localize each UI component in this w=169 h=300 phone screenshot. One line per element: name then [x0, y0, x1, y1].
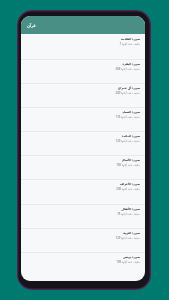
- staticText: مدنية - عدد آياتها 129: [115, 236, 140, 240]
- staticText: سورة يونس: [123, 255, 140, 259]
- button[interactable]: سورة الفاتحة: [21, 34, 145, 59]
- button[interactable]: سورة آل عمران: [21, 83, 145, 107]
- staticText: سورة التوبة: [123, 231, 140, 235]
- staticText: سورة المائدة: [121, 134, 140, 138]
- button[interactable]: سورة الأعراف: [21, 179, 145, 203]
- staticText: سورة آل عمران: [117, 86, 140, 90]
- staticText: مدنية - عدد آياتها 200: [115, 91, 140, 95]
- staticText: مدنية - عدد آياتها 120: [115, 139, 140, 143]
- staticText: قرآن: [27, 23, 36, 28]
- staticText: سورة الأعراف: [119, 182, 140, 186]
- button[interactable]: سورة النساء: [21, 107, 145, 131]
- staticText: مكية - عدد آياتها 165: [116, 163, 140, 167]
- staticText: مدنية - عدد آياتها 176: [115, 115, 140, 119]
- staticText: مدنية - عدد آياتها 286: [115, 67, 140, 71]
- staticText: سورة النساء: [122, 110, 140, 114]
- staticText: سورة الأنعام: [122, 158, 140, 162]
- staticText: سورة الفاتحة: [121, 37, 140, 41]
- staticText: سورة البقرة: [122, 62, 140, 66]
- button[interactable]: سورة المائدة: [21, 131, 145, 155]
- button[interactable]: سورة الأنعام: [21, 155, 145, 179]
- button[interactable]: سورة الأنفال: [21, 204, 145, 228]
- button[interactable]: سورة البقرة: [21, 59, 145, 83]
- button[interactable]: قرآن: [21, 16, 145, 34]
- staticText: سورة الأنفال: [121, 207, 140, 211]
- button[interactable]: سورة التوبة: [21, 228, 145, 252]
- staticText: مدنية - عدد آياتها 75: [117, 212, 140, 216]
- staticText: مكية - عدد آياتها 109: [116, 260, 140, 264]
- staticText: مكية - عدد آياتها 206: [116, 187, 140, 191]
- staticText: مكية - عدد آياتها 7: [119, 42, 140, 46]
- button[interactable]: سورة يونس: [21, 252, 145, 276]
